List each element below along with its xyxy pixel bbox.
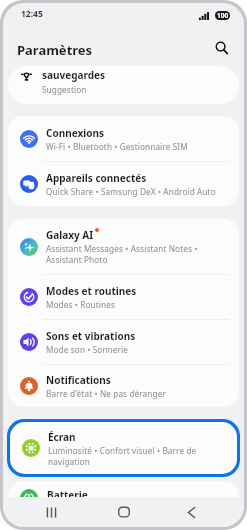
button[interactable]: Accueil: [110, 498, 138, 526]
staticText: Connexions: [46, 126, 104, 140]
staticText: Galaxy AI: [46, 228, 94, 242]
staticText: Batterie: [47, 488, 88, 502]
staticText: Modes • Routines: [46, 299, 115, 310]
staticText: Quick Share • Samsung DeX • Android Auto: [46, 186, 216, 197]
staticText: Mode son • Sonnerie: [46, 344, 129, 355]
staticText: Luminosité • Confort visuel • Barre de n…: [48, 445, 225, 467]
staticText: Barre d'état • Ne pas déranger: [46, 388, 166, 399]
button[interactable]: Appareils connectés: [8, 162, 239, 206]
button[interactable]: Galaxy AI: [8, 219, 239, 274]
staticText: Notifications: [46, 373, 111, 387]
staticText: Wi-Fi • Bluetooth • Gestionnaire SIM: [46, 141, 188, 152]
staticText: Sons et vibrations: [46, 329, 136, 343]
staticText: Assistant Messages • Assistant Notes • A…: [46, 243, 227, 265]
button[interactable]: Modes et routines: [8, 275, 239, 319]
button[interactable]: Retour: [177, 498, 205, 526]
staticText: Modes et routines: [46, 284, 137, 298]
button[interactable]: Applications récentes: [37, 498, 65, 526]
staticText: 100: [217, 11, 229, 20]
button[interactable]: Notifications: [8, 365, 239, 407]
staticText: Suggestion: [42, 84, 87, 95]
button[interactable]: Batterie: [8, 481, 239, 521]
button[interactable]: Sons et vibrations: [8, 320, 239, 364]
staticText: Appareils connectés: [46, 171, 147, 185]
staticText: 12:45: [21, 8, 43, 20]
button[interactable]: Écran: [10, 422, 237, 474]
button[interactable]: sauvegardes: [8, 66, 239, 104]
button[interactable]: Rechercher: [210, 36, 234, 60]
staticText: Écran: [48, 430, 76, 444]
button[interactable]: Connexions: [8, 116, 239, 161]
button[interactable]: Écran: [10, 422, 237, 474]
staticText: sauvegardes: [42, 68, 106, 82]
staticText: Paramètres: [17, 41, 93, 59]
